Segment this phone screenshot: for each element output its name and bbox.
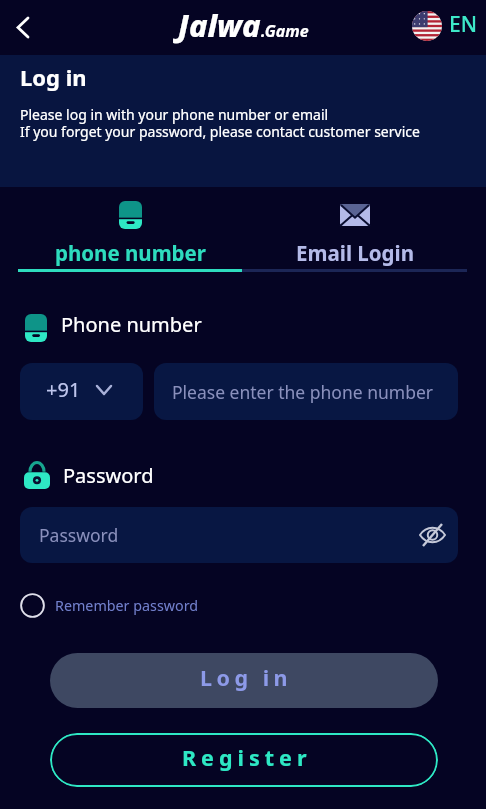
staticText: Please log in with your phone number or … [20,105,420,141]
staticText: phone number [55,239,206,267]
staticText: Phone number [61,311,202,338]
button[interactable]: Register [50,733,438,787]
button[interactable]: Password [20,507,458,563]
staticText: Log in [20,62,87,92]
button[interactable]: Email Login [242,201,467,272]
button[interactable]: Please enter the phone number [154,363,458,420]
staticText: Remember password [55,596,199,615]
staticText: Password [63,462,154,489]
staticText: Password [39,523,119,547]
staticText: +91 [46,376,81,403]
staticText: Log in [200,663,293,692]
staticText: Please enter the phone number [172,380,434,404]
button[interactable] [9,13,37,41]
button[interactable]: Remember password [20,593,199,618]
button[interactable]: EN [412,11,477,41]
button[interactable]: phone number [18,201,242,272]
staticText: Jalwa [178,4,261,46]
staticText: Email Login [296,239,414,267]
staticText: EN [449,10,477,39]
staticText: Register [182,743,312,772]
button[interactable]: +91 [20,363,143,420]
staticText: .Game [261,20,309,42]
button[interactable]: Log in [50,653,438,708]
